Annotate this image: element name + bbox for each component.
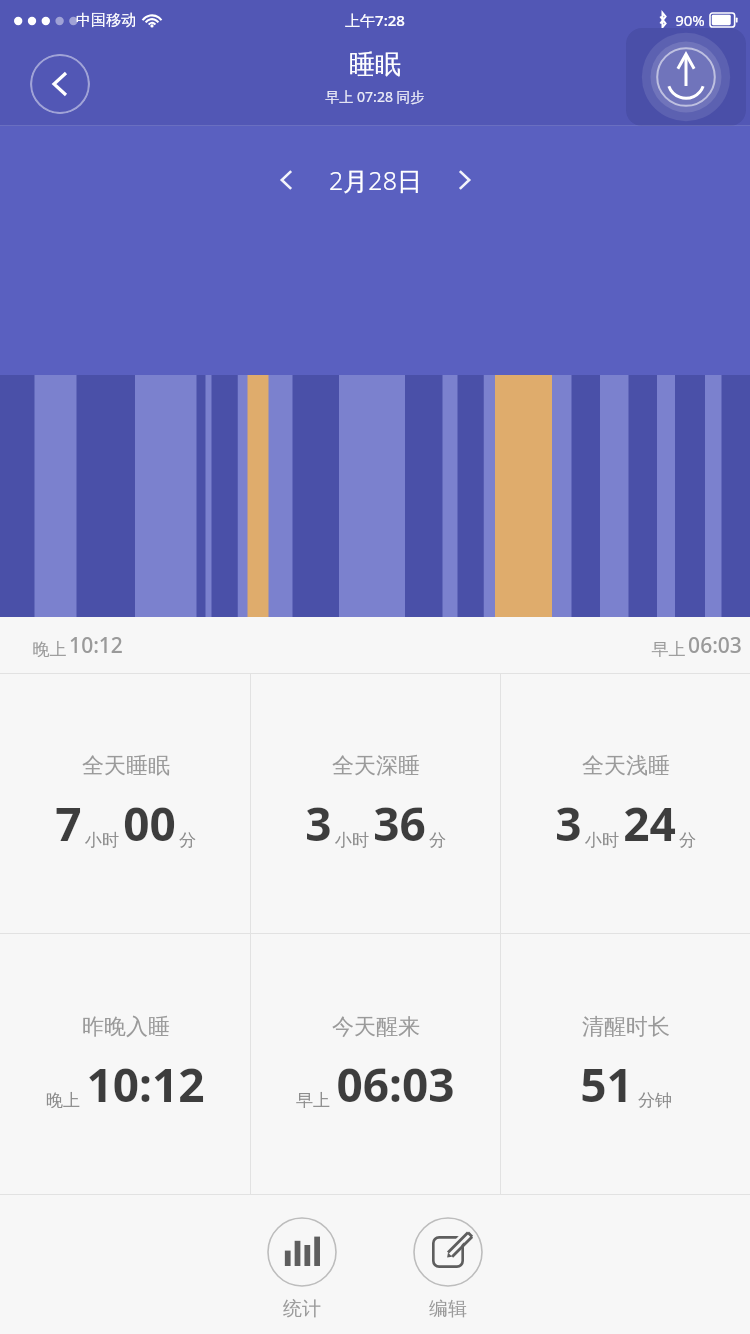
- staticText: 统计: [283, 1297, 321, 1321]
- staticText: 24: [623, 792, 676, 855]
- button[interactable]: 返回: [30, 54, 90, 114]
- staticText: 分: [679, 830, 696, 851]
- button[interactable]: 全天浅睡: [501, 674, 750, 933]
- staticText: 晚上: [46, 1090, 80, 1111]
- staticText: 编辑: [429, 1297, 467, 1321]
- staticText: 分: [179, 830, 196, 851]
- button[interactable]: 昨晚入睡: [0, 934, 250, 1194]
- button[interactable]: 后一天: [436, 154, 492, 206]
- staticText: 全天深睡: [332, 752, 420, 780]
- staticText: 今天醒来: [332, 1013, 420, 1041]
- staticText: 分: [429, 830, 446, 851]
- staticText: 早上 07:28 同步: [325, 87, 425, 106]
- button[interactable]: 清醒时长: [501, 934, 750, 1194]
- staticText: 36: [373, 792, 426, 855]
- staticText: 分钟: [638, 1090, 672, 1111]
- staticText: 小时: [585, 830, 619, 851]
- staticText: 清醒时长: [582, 1013, 670, 1041]
- staticText: 中国移动: [76, 11, 136, 30]
- staticText: 3: [555, 792, 582, 855]
- staticText: 全天浅睡: [582, 752, 670, 780]
- button[interactable]: 同步: [626, 28, 746, 126]
- staticText: 90%: [675, 10, 705, 30]
- staticText: 06:03: [336, 1053, 455, 1116]
- button[interactable]: 统计: [257, 1213, 347, 1325]
- staticText: 早上: [296, 1090, 330, 1111]
- button[interactable]: 前一天: [259, 154, 315, 206]
- staticText: 小时: [85, 830, 119, 851]
- staticText: 早上: [649, 637, 688, 660]
- button[interactable]: 今天醒来: [251, 934, 500, 1194]
- staticText: 51: [580, 1053, 633, 1116]
- staticText: 06:03: [688, 631, 742, 660]
- button[interactable]: 全天睡眠: [0, 674, 250, 933]
- staticText: 10:12: [86, 1053, 205, 1116]
- staticText: 晚上: [30, 637, 69, 660]
- staticText: 3: [305, 792, 332, 855]
- staticText: 00: [123, 792, 176, 855]
- staticText: 昨晚入睡: [82, 1013, 170, 1041]
- staticText: 小时: [335, 830, 369, 851]
- button[interactable]: 编辑: [403, 1213, 493, 1325]
- staticText: 10:12: [69, 631, 123, 660]
- staticText: 上午7:28: [345, 10, 405, 30]
- staticText: 全天睡眠: [82, 752, 170, 780]
- staticText: 2月28日: [329, 163, 422, 197]
- button[interactable]: 全天深睡: [251, 674, 500, 933]
- staticText: 7: [55, 792, 82, 855]
- staticText: 睡眠: [349, 48, 401, 81]
